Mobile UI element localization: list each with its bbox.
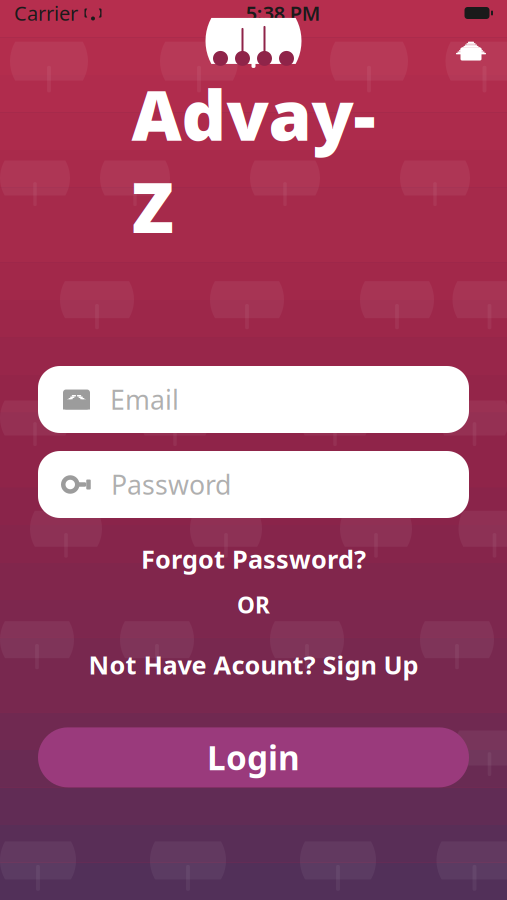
staticText: Password: [111, 467, 231, 502]
staticText: Not Have Acount? Sign Up: [88, 648, 418, 681]
button[interactable]: Forgot Password?: [127, 534, 380, 584]
button[interactable]: Email: [38, 366, 469, 433]
staticText: 5:38 PM: [246, 0, 321, 26]
staticText: AdvayZ: [131, 68, 375, 252]
button[interactable]: Not Have Acount? Sign Up: [74, 640, 432, 689]
staticText: Email: [110, 382, 179, 417]
staticText: Login: [207, 735, 300, 780]
button[interactable]: Password: [38, 451, 469, 518]
button[interactable]: Home: [448, 27, 494, 68]
staticText: Forgot Password?: [141, 542, 366, 576]
button[interactable]: Login: [38, 727, 469, 787]
staticText: Carrier: [14, 0, 78, 26]
staticText: OR: [237, 590, 270, 620]
